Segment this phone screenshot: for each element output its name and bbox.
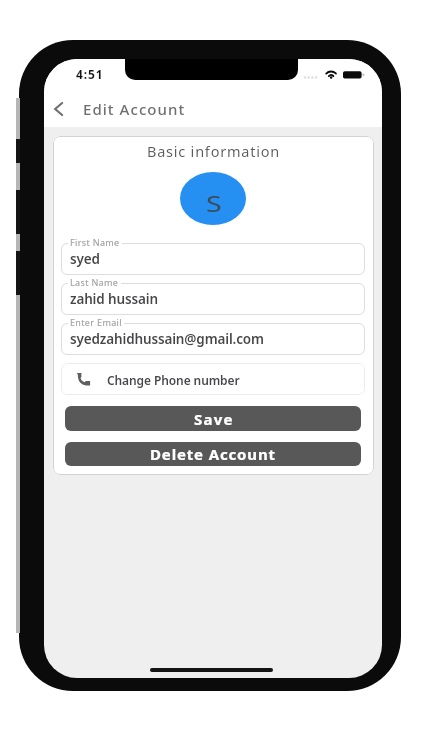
staticText: S	[206, 188, 223, 218]
staticText: 4:51	[76, 66, 104, 82]
staticText: Delete Account	[150, 444, 276, 464]
staticText: Change Phone number	[107, 372, 240, 388]
staticText: zahid hussain	[70, 290, 158, 308]
staticText: Save	[194, 409, 234, 429]
staticText: First Name	[70, 236, 120, 248]
staticText: Last Name	[70, 276, 119, 288]
staticText: Basic information	[53, 141, 374, 161]
staticText: syed	[70, 250, 100, 268]
staticText: Enter Email	[70, 316, 122, 328]
button[interactable]: Enter Email	[61, 323, 365, 355]
button[interactable]: Back	[45, 94, 71, 123]
staticText: syedzahidhussain@gmail.com	[70, 330, 264, 348]
button[interactable]: Change Phone number	[61, 363, 365, 395]
button[interactable]: Last Name	[61, 283, 365, 315]
button[interactable]: Profile picture	[180, 172, 246, 225]
staticText: Edit Account	[83, 99, 186, 119]
button[interactable]: Save	[65, 406, 361, 431]
button[interactable]: Delete Account	[65, 442, 361, 466]
button[interactable]: First Name	[61, 243, 365, 275]
